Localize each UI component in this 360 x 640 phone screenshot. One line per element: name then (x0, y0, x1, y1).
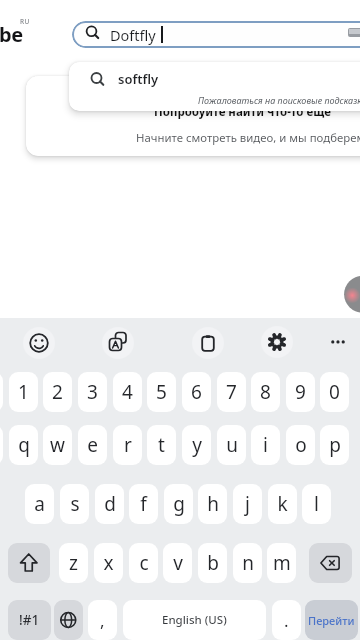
button[interactable]: b (198, 543, 227, 583)
button[interactable]: p (320, 425, 349, 465)
button[interactable]: i (251, 425, 280, 465)
staticText: softfly (118, 70, 159, 88)
staticText: t (158, 432, 165, 458)
button[interactable]: v (163, 543, 192, 583)
button[interactable] (102, 327, 134, 359)
button[interactable] (23, 327, 55, 359)
staticText: y (192, 432, 202, 458)
button[interactable]: h (198, 484, 227, 524)
button[interactable] (69, 62, 360, 111)
staticText: h (207, 491, 219, 517)
button[interactable]: n (233, 543, 262, 583)
staticText: u (226, 432, 238, 458)
button[interactable]: 8 (251, 372, 280, 412)
staticText: e (87, 432, 98, 458)
button[interactable]: d (95, 484, 124, 524)
staticText: . (284, 609, 289, 632)
button[interactable]: 1 (9, 372, 38, 412)
button[interactable] (192, 327, 224, 359)
staticText: Doftfly (110, 25, 156, 45)
staticText: 2 (52, 379, 63, 405)
staticText: 1 (18, 379, 29, 405)
button[interactable]: y (182, 425, 211, 465)
staticText: g (173, 491, 185, 517)
button[interactable] (261, 326, 293, 358)
staticText: 4 (122, 379, 133, 405)
staticText: 8 (260, 379, 271, 405)
button[interactable]: f (129, 484, 158, 524)
button[interactable]: 7 (217, 372, 246, 412)
staticText: m (273, 550, 291, 576)
button[interactable]: g (164, 484, 193, 524)
staticText: c (139, 550, 149, 576)
staticText: j (245, 491, 250, 517)
staticText: 3 (87, 379, 98, 405)
staticText: s (70, 491, 80, 517)
button[interactable]: r (113, 425, 142, 465)
staticText: RU (20, 17, 30, 26)
button[interactable]: 6 (182, 372, 211, 412)
button[interactable]: l (302, 484, 331, 524)
button[interactable]: 0 (320, 372, 349, 412)
staticText: l (314, 491, 319, 517)
button[interactable]: o (286, 425, 315, 465)
staticText: q (18, 432, 30, 458)
button[interactable] (54, 600, 83, 640)
staticText: Перейти (308, 613, 355, 628)
button[interactable]: English (US) (123, 600, 266, 640)
button[interactable] (8, 543, 50, 583)
staticText: , (100, 609, 105, 632)
staticText: 0 (329, 379, 340, 405)
button[interactable]: w (43, 425, 72, 465)
button[interactable]: u (217, 425, 246, 465)
button[interactable]: 2 (43, 372, 72, 412)
staticText: v (173, 550, 183, 576)
button[interactable]: c (129, 543, 158, 583)
button[interactable]: e (78, 425, 107, 465)
button[interactable] (0, 372, 3, 412)
button[interactable]: 4 (113, 372, 142, 412)
button[interactable]: k (268, 484, 297, 524)
staticText: English (US) (162, 612, 227, 628)
staticText: w (50, 432, 65, 458)
staticText: be (0, 21, 23, 48)
staticText: x (103, 550, 114, 576)
staticText: 6 (191, 379, 202, 405)
button[interactable]: x (94, 543, 123, 583)
staticText: i (263, 432, 268, 458)
button[interactable]: z (59, 543, 88, 583)
button[interactable] (309, 543, 352, 583)
button[interactable]: m (267, 543, 296, 583)
staticText: 9 (295, 379, 306, 405)
staticText: Попробуйте найти что-то ещё (154, 104, 331, 120)
staticText: o (295, 432, 307, 458)
button[interactable]: q (9, 425, 38, 465)
staticText: k (277, 491, 288, 517)
staticText: 5 (156, 379, 167, 405)
staticText: Начните смотреть видео, и мы подберем дл… (136, 130, 360, 146)
button[interactable]: t (147, 425, 176, 465)
staticText: 7 (226, 379, 237, 405)
staticText: d (104, 491, 116, 517)
button[interactable]: j (233, 484, 262, 524)
button[interactable]: 9 (286, 372, 315, 412)
button[interactable]: !#1 (8, 600, 51, 640)
button[interactable]: 3 (78, 372, 107, 412)
button[interactable]: s (60, 484, 89, 524)
staticText: Пожаловаться на поисковые подсказки (198, 94, 360, 106)
staticText: !#1 (19, 611, 40, 629)
button[interactable] (322, 326, 354, 358)
staticText: a (34, 491, 45, 517)
staticText: f (140, 491, 147, 517)
staticText: r (124, 432, 132, 458)
staticText: n (242, 550, 254, 576)
button[interactable] (0, 425, 3, 465)
button[interactable] (72, 21, 360, 48)
button[interactable]: Перейти (305, 600, 358, 640)
button[interactable]: 5 (147, 372, 176, 412)
button[interactable]: a (25, 484, 54, 524)
staticText: b (207, 550, 219, 576)
staticText: p (329, 432, 341, 458)
button[interactable]: , (88, 600, 117, 640)
button[interactable]: . (272, 600, 301, 640)
